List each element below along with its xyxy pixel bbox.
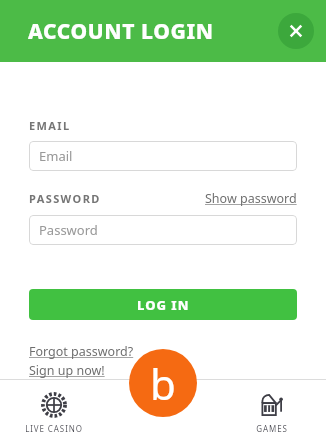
button[interactable]: Forgot password? bbox=[29, 343, 134, 360]
button[interactable]: LOG IN bbox=[29, 289, 297, 320]
button[interactable]: GAMES bbox=[217, 379, 326, 447]
button[interactable]: Sign up now! bbox=[29, 362, 105, 379]
staticText: Sign up now! bbox=[29, 362, 105, 379]
staticText: LIVE CASINO bbox=[25, 423, 83, 434]
button[interactable]: Home bbox=[129, 349, 197, 417]
button[interactable]: Email bbox=[29, 141, 297, 171]
staticText: Show password bbox=[205, 190, 297, 207]
button[interactable]: Close bbox=[278, 13, 314, 49]
button[interactable]: Show password bbox=[205, 190, 297, 207]
staticText: Email bbox=[39, 147, 73, 165]
staticText: Password bbox=[39, 221, 98, 239]
staticText: b bbox=[150, 355, 176, 412]
staticText: EMAIL bbox=[29, 118, 71, 133]
button[interactable]: Password bbox=[29, 215, 297, 245]
staticText: GAMES bbox=[256, 423, 288, 434]
button[interactable]: LIVE CASINO bbox=[0, 379, 108, 447]
staticText: ACCOUNT LOGIN bbox=[28, 17, 214, 46]
staticText: Forgot password? bbox=[29, 343, 134, 360]
staticText: LOG IN bbox=[137, 296, 190, 314]
staticText: PASSWORD bbox=[29, 191, 101, 206]
